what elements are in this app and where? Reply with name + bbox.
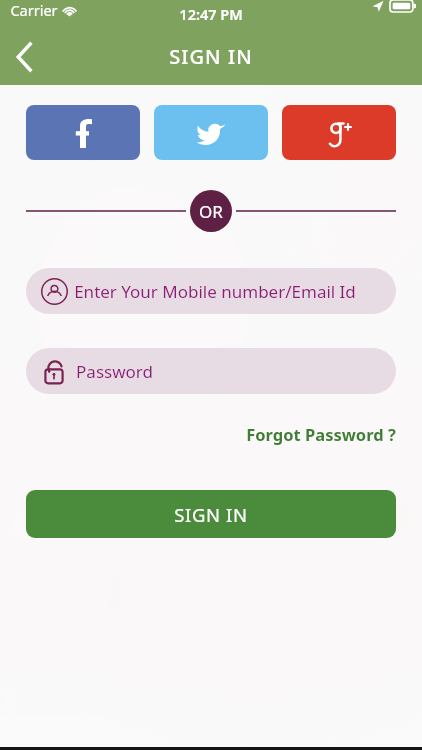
staticText: OR: [199, 200, 223, 223]
staticText: Enter Your Mobile number/Email Id: [74, 280, 356, 303]
button[interactable]: SIGN IN: [26, 490, 396, 538]
button[interactable]: Sign in with Facebook: [26, 105, 140, 160]
staticText: SIGN IN: [174, 502, 248, 527]
staticText: 12:47 PM: [179, 4, 243, 24]
button[interactable]: Sign in with Google Plus: [282, 105, 396, 160]
staticText: Carrier: [10, 0, 58, 20]
staticText: Password: [76, 360, 153, 383]
staticText: SIGN IN: [169, 43, 253, 70]
button[interactable]: Password: [26, 348, 396, 394]
button[interactable]: Sign in with Twitter: [154, 105, 268, 160]
button[interactable]: Back: [0, 33, 48, 81]
button[interactable]: Enter Your Mobile number/Email Id: [26, 268, 396, 314]
staticText: Forgot Password ?: [246, 423, 396, 445]
button[interactable]: Forgot Password ?: [220, 417, 422, 451]
